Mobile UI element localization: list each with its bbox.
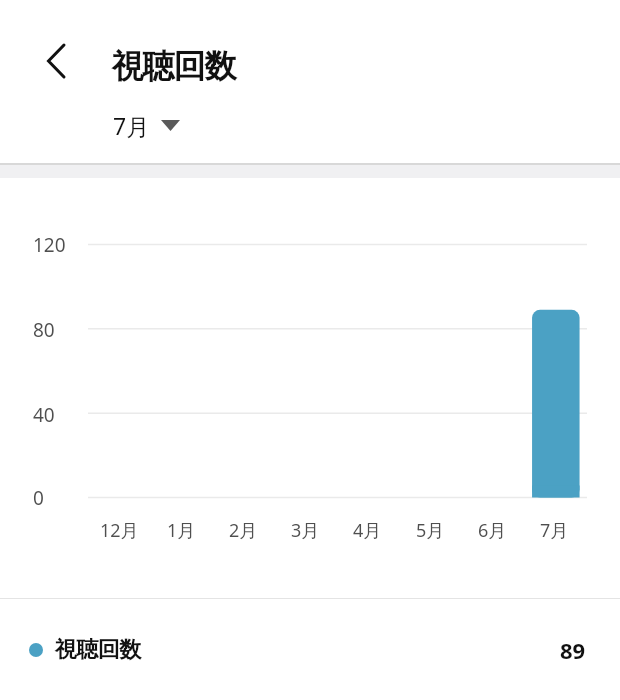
staticText: 4月 — [353, 518, 382, 543]
staticText: 6月 — [478, 518, 507, 543]
staticText: 40 — [33, 402, 55, 428]
button[interactable]: 視聴回数 — [0, 630, 620, 670]
button[interactable] — [36, 41, 76, 81]
staticText: 89 — [560, 635, 586, 665]
staticText: 7月 — [540, 518, 569, 543]
staticText: 120 — [33, 232, 66, 258]
staticText: 2月 — [229, 518, 258, 543]
button[interactable]: 7月 — [108, 105, 185, 146]
staticText: 12月 — [100, 518, 139, 543]
staticText: 0 — [33, 485, 44, 511]
staticText: 5月 — [416, 518, 445, 543]
staticText: 視聴回数 — [112, 46, 236, 86]
staticText: 視聴回数 — [55, 636, 141, 664]
staticText: 80 — [33, 317, 55, 343]
staticText: 3月 — [291, 518, 320, 543]
staticText: 7月 — [113, 110, 150, 141]
staticText: 1月 — [167, 518, 196, 543]
